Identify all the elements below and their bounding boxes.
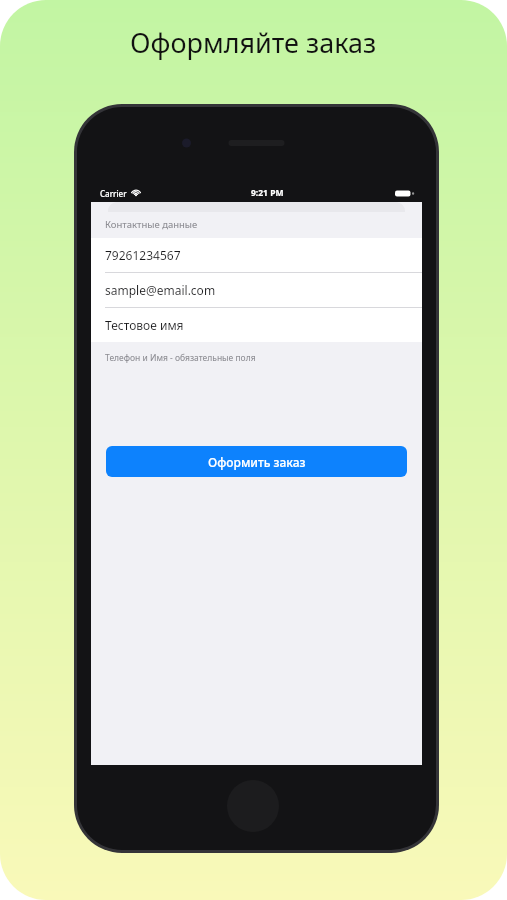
staticText: Контактные данные xyxy=(105,218,198,231)
staticText: Тестовое имя xyxy=(105,317,184,333)
button[interactable]: Тестовое имя xyxy=(91,308,422,342)
staticText: 9:21 PM xyxy=(251,187,284,199)
button[interactable]: sample@email.com xyxy=(91,273,422,307)
staticText: Оформить заказ xyxy=(208,454,306,470)
staticText: Оформляйте заказ xyxy=(130,24,377,61)
button[interactable]: 79261234567 xyxy=(91,238,422,272)
staticText: 79261234567 xyxy=(105,247,181,263)
staticText: sample@email.com xyxy=(105,282,216,298)
staticText: Телефон и Имя - обязательные поля xyxy=(105,352,256,364)
button[interactable]: Home xyxy=(227,780,279,832)
button[interactable]: Оформить заказ xyxy=(106,446,407,477)
staticText: Carrier xyxy=(100,188,127,199)
